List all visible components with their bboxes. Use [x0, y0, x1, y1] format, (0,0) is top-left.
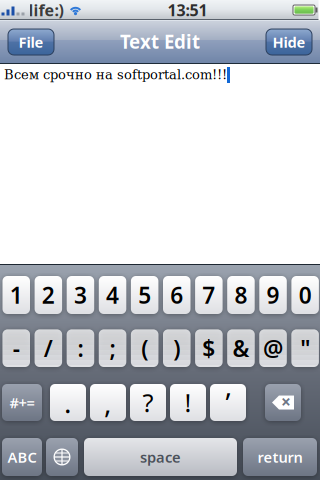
staticText: @: [263, 333, 283, 363]
button[interactable]: 6: [163, 276, 190, 314]
staticText: 13:51: [167, 0, 207, 21]
button[interactable]: :: [67, 329, 94, 367]
staticText: 4: [106, 280, 119, 310]
button[interactable]: @: [259, 329, 287, 367]
staticText: ": [300, 333, 310, 363]
staticText: #+=: [9, 393, 34, 412]
staticText: ?: [142, 386, 153, 419]
staticText: 9: [267, 280, 280, 310]
button[interactable]: ABC: [2, 438, 42, 476]
button[interactable]: File: [8, 29, 54, 55]
button[interactable]: (: [131, 329, 158, 367]
staticText: :: [77, 333, 83, 363]
staticText: -: [13, 333, 20, 363]
button[interactable]: #+=: [2, 384, 42, 421]
button[interactable]: 9: [259, 276, 287, 314]
button[interactable]: 8: [227, 276, 255, 314]
staticText: .: [64, 384, 72, 421]
button[interactable]: ": [291, 329, 319, 367]
staticText: ;: [109, 333, 115, 363]
button[interactable]: ’: [210, 384, 246, 421]
staticText: return: [257, 447, 302, 467]
staticText: 2: [42, 280, 55, 310]
button[interactable]: 5: [131, 276, 158, 314]
staticText: 7: [202, 280, 215, 310]
button[interactable]: 4: [99, 276, 126, 314]
staticText: ×: [281, 390, 291, 413]
button[interactable]: 7: [195, 276, 223, 314]
staticText: ,: [104, 384, 112, 421]
button[interactable]: return: [243, 438, 317, 476]
staticText: Hide: [272, 32, 305, 52]
staticText: 3: [74, 280, 87, 310]
staticText: ’: [225, 384, 230, 421]
staticText: life:): [28, 0, 63, 21]
button[interactable]: 3: [67, 276, 94, 314]
staticText: $: [202, 333, 215, 363]
button[interactable]: -: [2, 329, 30, 367]
staticText: 1: [10, 280, 23, 310]
staticText: 0: [299, 280, 312, 310]
staticText: ABC: [7, 447, 36, 467]
staticText: &: [232, 333, 249, 363]
button[interactable]: Hide: [266, 29, 312, 55]
staticText: Всем срочно на softportal.com!!!: [4, 67, 227, 82]
button[interactable]: ×: [265, 384, 301, 421]
button[interactable]: /: [35, 329, 62, 367]
button[interactable]: [46, 438, 78, 476]
button[interactable]: 0: [291, 276, 319, 314]
button[interactable]: ,: [90, 384, 126, 421]
button[interactable]: .: [50, 384, 86, 421]
staticText: 5: [138, 280, 151, 310]
button[interactable]: $: [195, 329, 223, 367]
staticText: /: [44, 333, 53, 363]
button[interactable]: ?: [130, 384, 166, 421]
staticText: space: [140, 447, 181, 467]
button[interactable]: 2: [35, 276, 62, 314]
staticText: File: [18, 32, 43, 52]
staticText: (: [141, 333, 148, 363]
button[interactable]: &: [227, 329, 255, 367]
button[interactable]: !: [170, 384, 206, 421]
button[interactable]: space: [84, 438, 237, 476]
button[interactable]: 1: [2, 276, 30, 314]
staticText: 8: [234, 280, 247, 310]
staticText: ): [173, 333, 180, 363]
staticText: !: [184, 386, 191, 419]
staticText: Text Edit: [120, 29, 200, 54]
button[interactable]: ): [163, 329, 190, 367]
staticText: 6: [170, 280, 183, 310]
button[interactable]: ;: [99, 329, 126, 367]
